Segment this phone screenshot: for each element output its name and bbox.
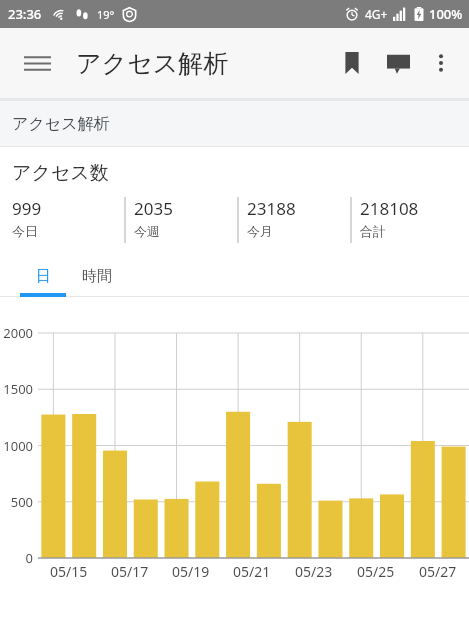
staticText: 999 [12, 197, 42, 220]
staticText: 1000 [3, 437, 33, 455]
button[interactable]: 時間 [66, 259, 128, 293]
button[interactable]: 2035 [134, 197, 237, 243]
button[interactable]: Bookmark [329, 40, 375, 86]
staticText: 500 [10, 493, 33, 511]
staticText: 今週 [134, 223, 160, 239]
staticText: 今日 [12, 223, 38, 239]
button[interactable]: More options [421, 43, 461, 83]
staticText: 100% [429, 5, 463, 23]
staticText: 2000 [3, 324, 33, 342]
staticText: 今月 [247, 223, 273, 239]
button[interactable]: Comments [375, 40, 421, 86]
staticText: 05/27 [419, 562, 457, 581]
staticText: アクセス解析 [76, 48, 229, 79]
staticText: 05/17 [111, 562, 149, 581]
staticText: 2035 [134, 197, 173, 220]
staticText: 218108 [360, 197, 419, 220]
staticText: 0 [25, 549, 33, 567]
staticText: 時間 [82, 267, 112, 286]
staticText: 05/23 [295, 562, 333, 581]
staticText: 23188 [247, 197, 296, 220]
staticText: アクセス解析 [12, 114, 110, 134]
staticText: アクセス数 [12, 161, 109, 185]
staticText: 05/21 [233, 562, 271, 581]
staticText: 4G+ [365, 6, 388, 22]
button[interactable]: Menu [16, 42, 58, 84]
staticText: 05/19 [172, 562, 210, 581]
staticText: 05/25 [357, 562, 395, 581]
staticText: 合計 [360, 223, 386, 239]
button[interactable]: 23188 [247, 197, 350, 243]
staticText: 1500 [3, 380, 33, 398]
staticText: 23:36 [8, 5, 42, 23]
staticText: 日 [36, 267, 51, 286]
button[interactable]: 日 [20, 259, 66, 293]
button[interactable]: 218108 [360, 197, 463, 243]
staticText: 05/15 [50, 562, 88, 581]
button[interactable]: 999 [12, 197, 124, 243]
staticText: 19° [97, 7, 115, 22]
button[interactable]: アクセス解析 [0, 101, 469, 146]
